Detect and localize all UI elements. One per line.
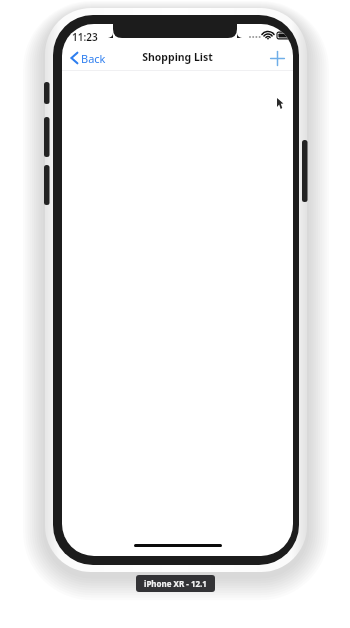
staticText: Back xyxy=(81,51,106,66)
staticText: Shopping List xyxy=(142,50,213,64)
button[interactable]: Add item xyxy=(264,45,290,71)
staticText: iPhone XR - 12.1 xyxy=(144,578,207,589)
button[interactable]: Back xyxy=(66,45,114,71)
staticText: 11:23 xyxy=(72,30,98,44)
